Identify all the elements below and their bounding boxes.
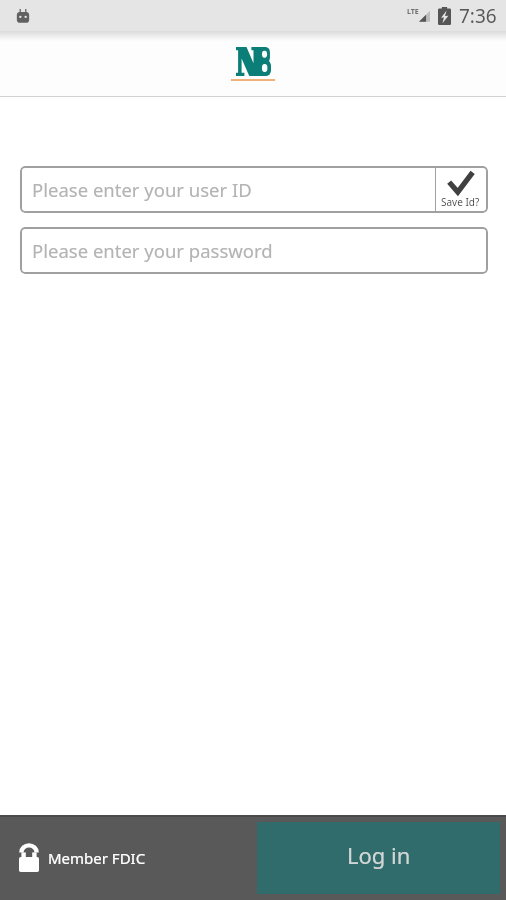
staticText: Please enter your user ID: [32, 177, 252, 202]
staticText: LTE: [407, 7, 419, 17]
staticText: Please enter your password: [32, 238, 273, 263]
staticText: Member FDIC: [48, 848, 146, 868]
button[interactable]: Save Id: [436, 166, 488, 213]
staticText: Save Id?: [441, 195, 480, 209]
staticText: Log in: [347, 840, 411, 870]
button[interactable]: Member FDIC: [19, 844, 146, 872]
button[interactable]: Please enter your password: [20, 227, 488, 274]
staticText: 7:36: [459, 3, 497, 29]
button[interactable]: Please enter your user ID: [20, 166, 488, 213]
button[interactable]: Log in: [257, 822, 500, 894]
